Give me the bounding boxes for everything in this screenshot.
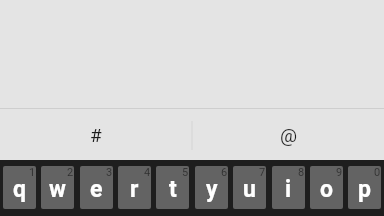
- staticText: @: [280, 124, 298, 146]
- staticText: 4: [144, 166, 151, 179]
- staticText: 1: [29, 166, 36, 179]
- button[interactable]: 2: [41, 166, 74, 209]
- button[interactable]: 5: [156, 166, 189, 209]
- button[interactable]: 7: [233, 166, 266, 209]
- button[interactable]: 1: [3, 166, 36, 209]
- staticText: 3: [106, 166, 113, 179]
- button[interactable]: @: [193, 109, 384, 160]
- button[interactable]: #: [0, 109, 191, 160]
- button[interactable]: 3: [80, 166, 113, 209]
- button[interactable]: 6: [195, 166, 228, 209]
- button[interactable]: 4: [118, 166, 151, 209]
- staticText: q: [13, 176, 26, 203]
- staticText: p: [358, 176, 371, 203]
- staticText: y: [206, 176, 218, 203]
- button[interactable]: 0: [348, 166, 381, 209]
- staticText: u: [243, 176, 256, 203]
- staticText: e: [90, 176, 103, 203]
- staticText: 6: [221, 166, 228, 179]
- button[interactable]: 9: [310, 166, 343, 209]
- staticText: 2: [67, 166, 74, 179]
- staticText: t: [169, 176, 177, 203]
- staticText: 9: [336, 166, 343, 179]
- button[interactable]: 8: [272, 166, 305, 209]
- staticText: 8: [298, 166, 305, 179]
- staticText: w: [49, 176, 66, 203]
- staticText: 0: [374, 166, 381, 179]
- staticText: i: [285, 176, 292, 203]
- staticText: o: [320, 176, 334, 203]
- staticText: 5: [182, 166, 189, 179]
- staticText: r: [130, 176, 139, 203]
- staticText: #: [90, 124, 102, 146]
- staticText: 7: [259, 166, 266, 179]
